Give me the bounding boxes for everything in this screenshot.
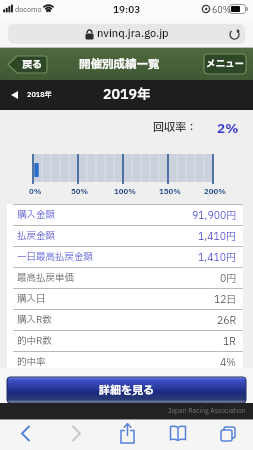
staticText: 一日最高払戻金額 xyxy=(17,250,94,264)
staticText: 2018年 xyxy=(27,90,52,100)
staticText: 戻る xyxy=(22,57,42,72)
button[interactable]: 詳細を見る xyxy=(7,377,246,403)
staticText: 回収率： xyxy=(153,119,197,136)
staticText: メニュー xyxy=(206,57,245,71)
staticText: 200% xyxy=(204,186,226,196)
staticText: 的中率 xyxy=(17,355,46,369)
button[interactable]: nvinq.jra.go.jp xyxy=(8,24,245,44)
button[interactable]: 2018年 xyxy=(11,80,52,110)
button[interactable]: 購入R数 xyxy=(7,310,243,330)
staticText: 0円 xyxy=(220,271,237,286)
staticText: 払戻金額 xyxy=(17,229,56,243)
staticText: 1,410円 xyxy=(198,250,237,265)
button[interactable]: 購入金額 xyxy=(7,205,243,225)
button[interactable]: 購入日 xyxy=(7,289,243,309)
button[interactable] xyxy=(218,424,238,444)
staticText: 100% xyxy=(114,186,136,196)
staticText: 購入R数 xyxy=(17,313,52,327)
staticText: 購入日 xyxy=(17,292,46,306)
staticText: 的中R数 xyxy=(17,334,52,348)
staticText: 2% xyxy=(217,119,239,138)
staticText: 1R xyxy=(223,334,237,349)
staticText: 91,900円 xyxy=(192,208,237,223)
button[interactable]: 最高払戻単価 xyxy=(7,268,243,288)
staticText: 26R xyxy=(217,313,237,328)
staticText: 1,410円 xyxy=(198,229,237,244)
staticText: Japan Racing Association xyxy=(168,406,246,416)
button[interactable]: 的中率 xyxy=(7,352,243,372)
button[interactable]: 払戻金額 xyxy=(7,226,243,246)
staticText: 50% xyxy=(71,186,89,196)
button[interactable]: 一日最高払戻金額 xyxy=(7,247,243,267)
button[interactable] xyxy=(117,422,138,446)
button[interactable]: 戻る xyxy=(7,55,48,74)
staticText: 150% xyxy=(159,186,181,196)
staticText: 12日 xyxy=(214,292,237,307)
staticText: 60% xyxy=(212,4,231,17)
staticText: 19:03 xyxy=(113,3,141,17)
button[interactable] xyxy=(16,424,36,444)
staticText: 2019年 xyxy=(103,85,151,105)
button[interactable] xyxy=(66,424,86,444)
staticText: docomo xyxy=(15,5,42,15)
button[interactable] xyxy=(168,424,188,444)
staticText: 詳細を見る xyxy=(99,382,154,399)
staticText: 0% xyxy=(29,186,42,196)
staticText: nvinq.jra.go.jp xyxy=(97,26,169,42)
button[interactable]: メニュー xyxy=(204,54,246,74)
staticText: 購入金額 xyxy=(17,208,56,222)
staticText: 最高払戻単価 xyxy=(17,271,75,285)
staticText: 開催別成績一覧 xyxy=(79,56,160,73)
staticText: 4% xyxy=(220,355,237,370)
button[interactable]: 的中R数 xyxy=(7,331,243,351)
